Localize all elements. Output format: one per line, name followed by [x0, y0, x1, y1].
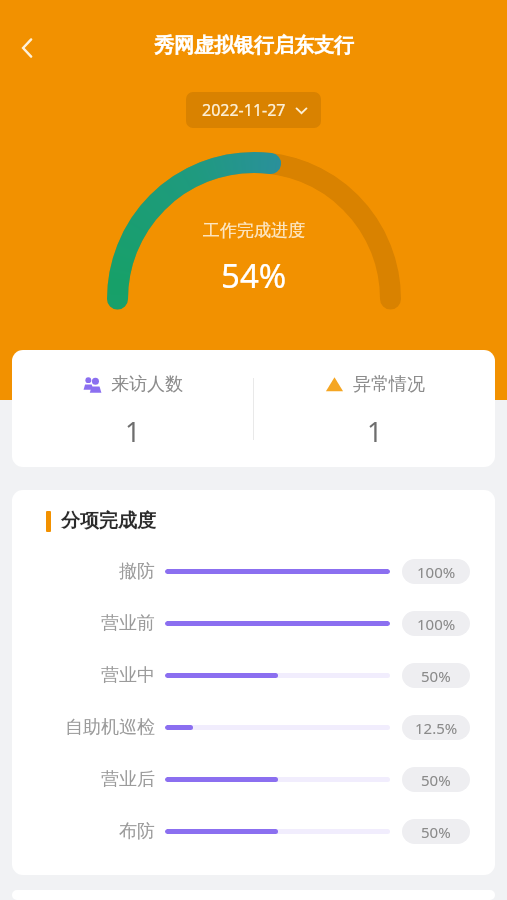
staticText: 12.5% — [415, 718, 458, 738]
staticText: 100% — [417, 614, 456, 634]
button[interactable]: Back — [7, 28, 47, 68]
staticText: 50% — [421, 822, 451, 842]
staticText: 秀网虚拟银行启东支行 — [154, 33, 354, 58]
staticText: 来访人数 — [111, 373, 183, 396]
staticText: 50% — [421, 770, 451, 790]
staticText: 2022-11-27 — [202, 99, 286, 121]
button[interactable]: 营业后 — [12, 753, 495, 805]
button[interactable]: 来访人数 — [12, 350, 253, 467]
staticText: 分项完成度 — [61, 509, 156, 533]
button[interactable]: 2022-11-27 — [186, 92, 321, 128]
staticText: 异常情况 — [353, 373, 425, 396]
staticText: 布防 — [119, 820, 155, 843]
button[interactable]: 布防 — [12, 805, 495, 857]
staticText: 营业前 — [101, 612, 155, 635]
staticText: 54% — [221, 253, 287, 298]
button[interactable]: 营业中 — [12, 649, 495, 701]
staticText: 1 — [125, 413, 141, 450]
button[interactable]: 撤防 — [12, 545, 495, 597]
staticText: 100% — [417, 562, 456, 582]
staticText: 营业中 — [101, 664, 155, 687]
staticText: 50% — [421, 666, 451, 686]
button[interactable]: 自助机巡检 — [12, 701, 495, 753]
button[interactable]: 异常情况 — [254, 350, 495, 467]
staticText: 1 — [367, 413, 383, 450]
staticText: 自助机巡检 — [65, 716, 155, 739]
button[interactable]: 营业前 — [12, 597, 495, 649]
staticText: 工作完成进度 — [203, 220, 305, 241]
staticText: 撤防 — [119, 560, 155, 583]
staticText: 营业后 — [101, 768, 155, 791]
